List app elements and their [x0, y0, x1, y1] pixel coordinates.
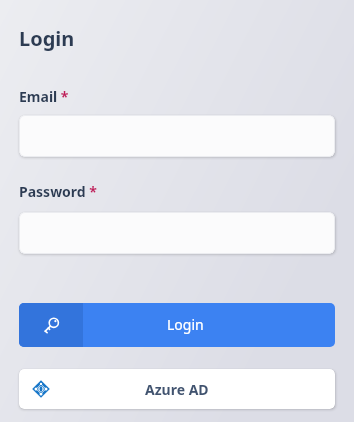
staticText: Email *	[19, 87, 69, 106]
button[interactable]: Azure AD	[19, 369, 335, 409]
staticText: Login	[167, 315, 204, 334]
staticText: Azure AD	[145, 380, 209, 399]
staticText: Login	[19, 25, 75, 52]
staticText: Password *	[19, 182, 97, 201]
button[interactable]	[19, 303, 335, 347]
button[interactable]	[19, 115, 335, 157]
button[interactable]	[19, 212, 335, 254]
